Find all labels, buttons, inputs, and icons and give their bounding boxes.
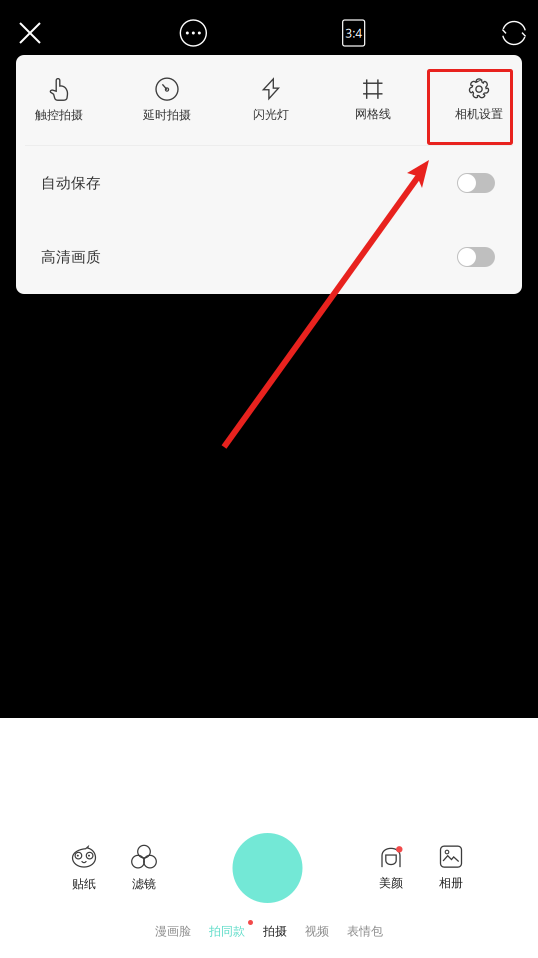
staticText: 高清画质 [41, 248, 101, 266]
button[interactable]: 相机设置 [436, 55, 522, 145]
button[interactable]: 拍同款 [200, 919, 254, 944]
staticText: 网格线 [355, 107, 391, 121]
button[interactable]: 漫画脸 [146, 919, 200, 944]
staticText: 视频 [305, 924, 329, 939]
staticText: 3:4 [345, 25, 362, 41]
staticText: 拍摄 [263, 924, 287, 939]
button[interactable]: 自动保存 [16, 146, 522, 220]
button[interactable]: 表情包 [338, 919, 392, 944]
button[interactable]: 视频 [296, 919, 338, 944]
staticText: 美颜 [379, 876, 403, 890]
button[interactable]: 触控拍摄 [16, 55, 102, 145]
button[interactable]: 延时拍摄 [102, 55, 232, 145]
button[interactable]: 美颜 [379, 846, 403, 890]
button[interactable]: Shutter [232, 833, 302, 903]
staticText: 漫画脸 [155, 924, 191, 939]
button[interactable]: Close [0, 5, 60, 60]
button[interactable]: 网格线 [310, 55, 436, 145]
staticText: 相册 [439, 876, 463, 890]
staticText: 表情包 [347, 924, 383, 939]
button[interactable]: More options [166, 5, 220, 60]
button[interactable]: Switch camera [487, 5, 538, 60]
button[interactable]: 相册 [439, 846, 463, 890]
staticText: 闪光灯 [253, 107, 289, 122]
staticText: 自动保存 [41, 174, 101, 192]
staticText: 滤镜 [132, 877, 156, 891]
staticText: 贴纸 [72, 877, 96, 891]
staticText: 拍同款 [209, 924, 245, 939]
staticText: 延时拍摄 [143, 108, 191, 122]
button[interactable]: 贴纸 [71, 845, 96, 891]
button[interactable]: 拍摄 [254, 919, 296, 944]
staticText: 触控拍摄 [35, 108, 83, 122]
button[interactable]: Aspect ratio 3 to 4 [327, 5, 381, 60]
staticText: 相机设置 [455, 107, 503, 121]
button[interactable]: 滤镜 [131, 845, 157, 891]
button[interactable]: 闪光灯 [232, 55, 310, 145]
button[interactable]: 高清画质 [16, 220, 522, 294]
